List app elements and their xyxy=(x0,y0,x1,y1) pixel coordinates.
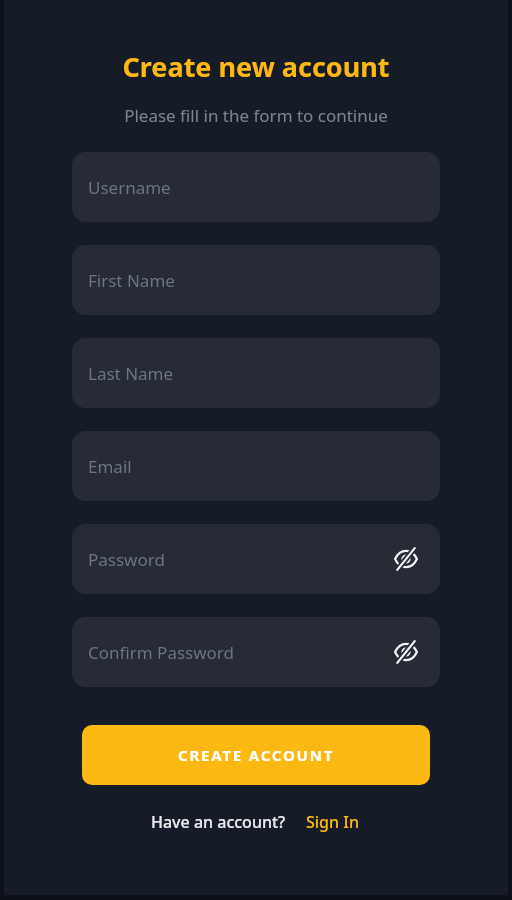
staticText: Email xyxy=(88,455,132,478)
button[interactable]: Toggle password visibility xyxy=(388,634,424,670)
button[interactable]: CREATE ACCOUNT xyxy=(82,725,430,785)
staticText: First Name xyxy=(88,269,175,292)
staticText: Sign In xyxy=(306,811,359,833)
staticText: Password xyxy=(88,548,165,571)
staticText: Please fill in the form to continue xyxy=(124,104,388,127)
staticText: Username xyxy=(88,176,171,199)
button[interactable]: Username xyxy=(72,152,440,222)
button[interactable]: First Name xyxy=(72,245,440,315)
staticText: Have an account? xyxy=(151,811,286,833)
button[interactable]: Sign In xyxy=(304,807,361,837)
button[interactable]: Email xyxy=(72,431,440,501)
staticText: Create new account xyxy=(122,48,390,85)
button[interactable]: Toggle password visibility xyxy=(388,541,424,577)
button[interactable]: Last Name xyxy=(72,338,440,408)
staticText: CREATE ACCOUNT xyxy=(178,745,335,765)
staticText: Confirm Password xyxy=(88,641,234,664)
button[interactable]: Confirm Password xyxy=(72,617,440,687)
staticText: Last Name xyxy=(88,362,174,385)
button[interactable]: Password xyxy=(72,524,440,594)
